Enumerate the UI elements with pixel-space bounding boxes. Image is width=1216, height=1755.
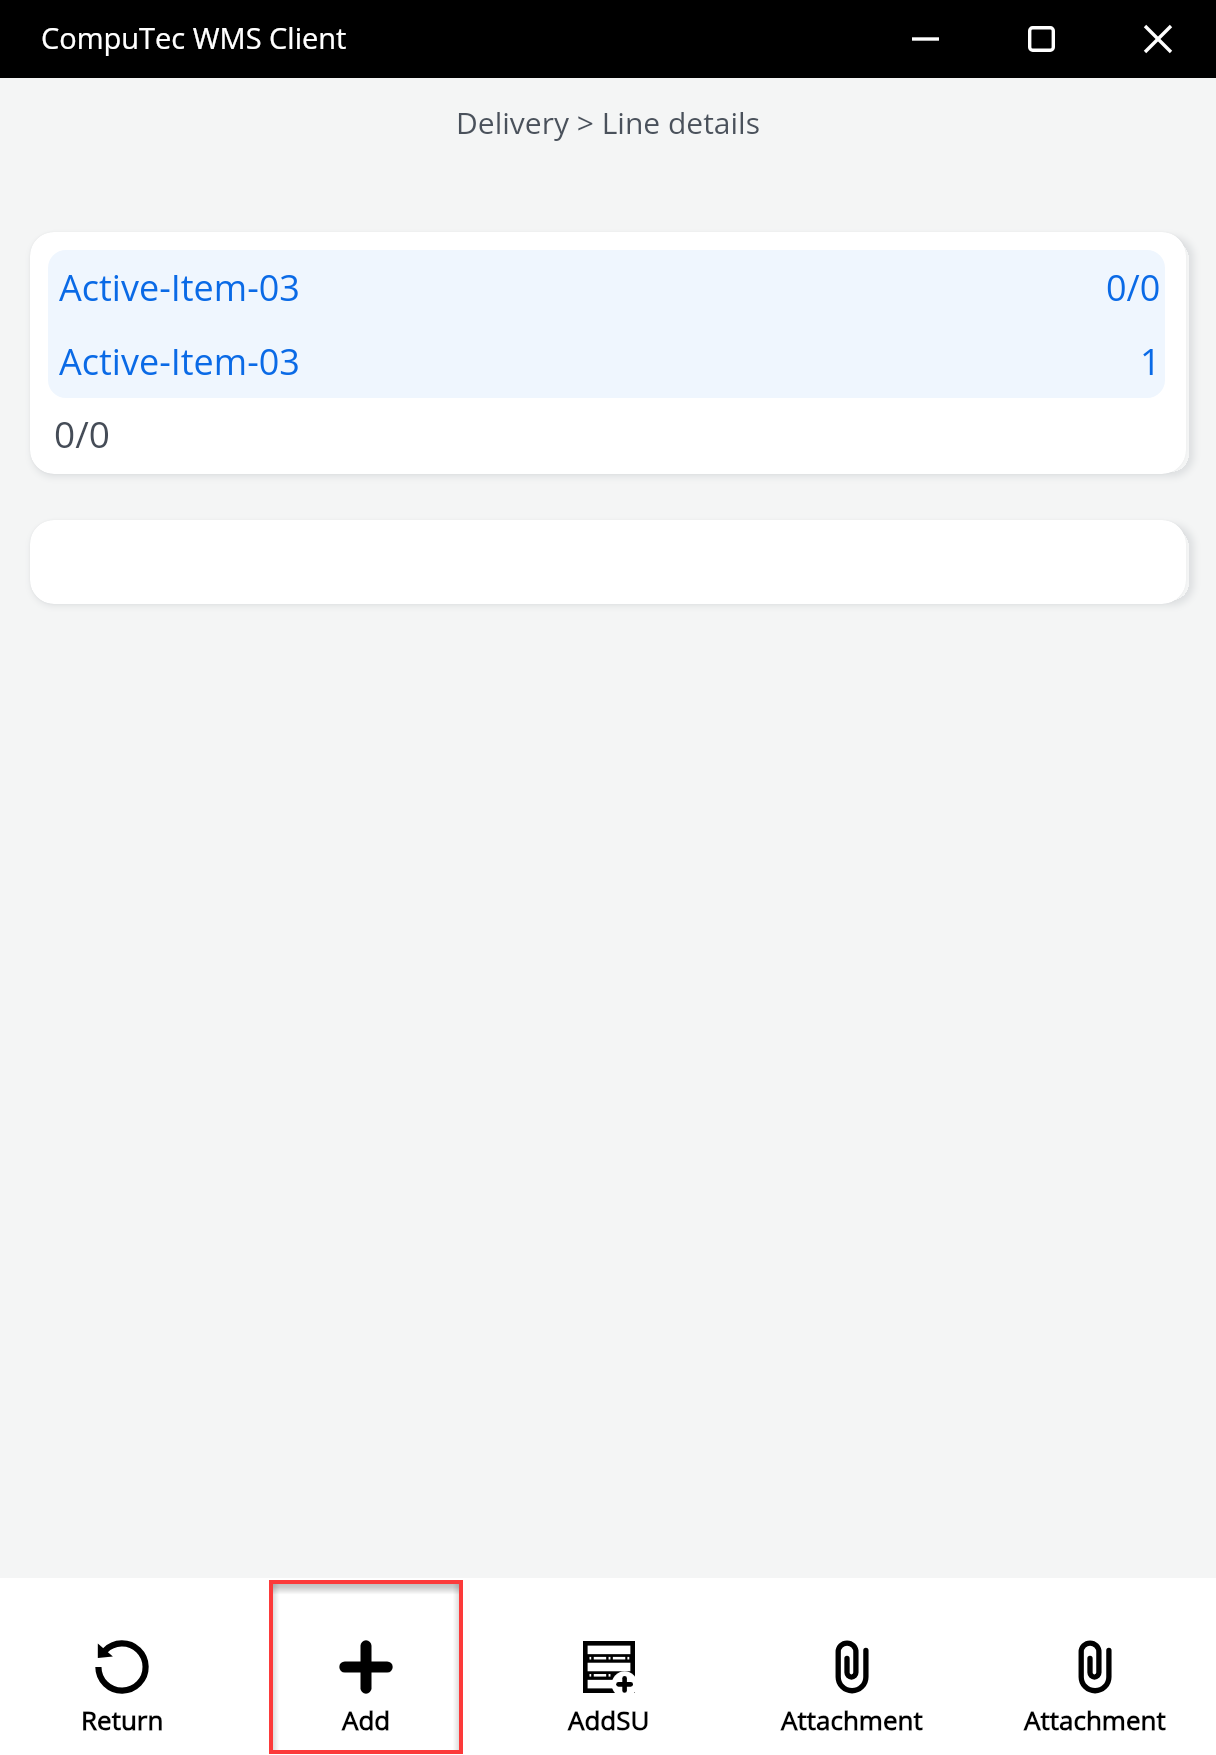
staticText: Delivery > Line details [0,102,1216,143]
button[interactable]: Return [25,1580,219,1754]
staticText: 0/0 [54,408,110,458]
staticText: 0/0 [1106,263,1161,312]
staticText: Add [342,1702,391,1737]
button[interactable]: Close [1100,0,1216,78]
button[interactable]: Maximize [982,0,1100,78]
staticText: Return [81,1702,164,1737]
button[interactable]: Minimize [868,0,982,78]
button[interactable]: 0/0 [30,398,1186,474]
staticText: Active-Item-03 [59,263,300,312]
staticText: Attachment [1024,1702,1166,1737]
staticText: Active-Item-03 [59,337,300,386]
button[interactable]: Active-Item-03 [48,250,1165,398]
button[interactable]: Attachment [998,1580,1192,1754]
staticText: CompuTec WMS Client [41,18,347,57]
button[interactable]: AddSU [512,1580,706,1754]
staticText: AddSU [568,1702,650,1737]
staticText: Attachment [781,1702,923,1737]
button[interactable]: Attachment [755,1580,949,1754]
staticText: 1 [1140,337,1161,386]
button[interactable]: Add [269,1580,463,1754]
